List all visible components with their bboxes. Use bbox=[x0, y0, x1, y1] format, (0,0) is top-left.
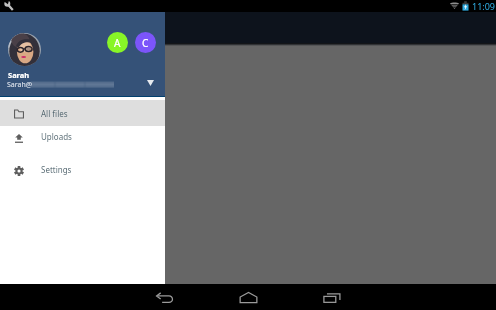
staticText: 11:09 bbox=[472, 0, 496, 12]
other: Switch account bbox=[147, 80, 154, 86]
staticText: Uploads bbox=[41, 131, 72, 142]
button[interactable]: Profile photo bbox=[8, 33, 41, 66]
other: Developer options bbox=[4, 1, 14, 11]
staticText: All files bbox=[41, 108, 68, 119]
button[interactable]: All files bbox=[0, 100, 165, 126]
staticText: C bbox=[142, 36, 149, 50]
button[interactable]: Settings bbox=[0, 156, 165, 182]
button[interactable]: Back bbox=[137, 284, 193, 310]
button[interactable]: Profile photo bbox=[0, 12, 165, 97]
staticText: A bbox=[114, 36, 121, 50]
button[interactable]: Recent apps bbox=[304, 284, 360, 310]
staticText: Settings bbox=[41, 164, 72, 175]
button[interactable]: Home bbox=[220, 284, 276, 310]
staticText: Sarah@ bbox=[7, 80, 33, 90]
staticText: Sarah bbox=[8, 70, 30, 80]
button[interactable]: A bbox=[107, 32, 128, 53]
button[interactable]: C bbox=[135, 32, 156, 53]
button[interactable]: Uploads bbox=[0, 123, 165, 149]
